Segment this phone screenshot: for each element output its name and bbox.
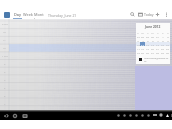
button[interactable]: Month bbox=[34, 12, 45, 24]
staticText: user.name@gmail.com bbox=[144, 56, 170, 62]
staticText: 2 bbox=[4, 62, 6, 65]
staticText: 22 bbox=[161, 47, 164, 50]
staticText: F bbox=[162, 31, 164, 34]
staticText: 18 bbox=[141, 47, 144, 50]
staticText: 28 bbox=[156, 51, 159, 54]
staticText: 27 bbox=[151, 51, 154, 54]
staticText: 11 bbox=[141, 43, 144, 46]
staticText: 15 bbox=[161, 43, 164, 46]
staticText: 25 bbox=[141, 51, 144, 54]
staticText: S bbox=[167, 31, 169, 34]
staticText: 30 bbox=[166, 51, 169, 54]
button[interactable]: More options bbox=[164, 12, 169, 17]
staticText: 14 bbox=[156, 43, 159, 46]
staticText: Thursday, June 21 bbox=[48, 13, 77, 18]
staticText: 28 bbox=[141, 35, 144, 38]
staticText: S bbox=[137, 31, 139, 34]
staticText: 30 bbox=[151, 35, 154, 38]
staticText: 16 bbox=[166, 43, 169, 46]
staticText: Day bbox=[14, 12, 21, 17]
staticText: June 2012 bbox=[145, 25, 161, 29]
staticText: 6 bbox=[152, 39, 154, 42]
staticText: 6 bbox=[4, 94, 6, 97]
button[interactable]: Day bbox=[13, 12, 22, 19]
button[interactable]: user.name@gmail.com bbox=[136, 56, 170, 62]
staticText: 5 bbox=[4, 86, 6, 89]
staticText: 29 bbox=[146, 35, 149, 38]
staticText: 11 bbox=[3, 38, 6, 41]
staticText: 8 bbox=[162, 39, 164, 42]
staticText: 2 bbox=[167, 35, 169, 38]
button[interactable]: Home bbox=[12, 113, 18, 119]
staticText: 10 bbox=[3, 30, 6, 33]
staticText: W bbox=[151, 31, 154, 34]
staticText: 23 bbox=[166, 47, 169, 50]
button[interactable]: Add event bbox=[155, 12, 160, 17]
staticText: M bbox=[141, 31, 144, 34]
staticText: T bbox=[147, 31, 149, 34]
staticText: 3 bbox=[137, 39, 139, 42]
staticText: 13 bbox=[151, 43, 154, 46]
staticText: 27 bbox=[137, 35, 140, 38]
staticText: 5 bbox=[147, 39, 149, 42]
button[interactable]: Search bbox=[130, 12, 135, 17]
staticText: 20 bbox=[151, 47, 154, 50]
button[interactable]: Today bbox=[138, 12, 154, 17]
staticText: 10 bbox=[137, 43, 140, 46]
button[interactable]: Week bbox=[23, 12, 33, 19]
staticText: 1 PM bbox=[2, 54, 8, 57]
staticText: 12 bbox=[146, 43, 149, 46]
staticText: Month bbox=[34, 12, 45, 22]
staticText: 31 bbox=[156, 35, 159, 38]
button[interactable]: Back bbox=[3, 113, 9, 119]
staticText: 7 bbox=[4, 102, 6, 105]
staticText: 1 bbox=[162, 35, 164, 38]
staticText: 19 bbox=[146, 47, 149, 50]
staticText: 4 bbox=[4, 78, 6, 81]
staticText: 4 bbox=[142, 39, 144, 42]
staticText: 9 bbox=[167, 39, 169, 42]
staticText: Week bbox=[23, 12, 33, 17]
staticText: 17 bbox=[137, 47, 140, 50]
staticText: 26 bbox=[146, 51, 149, 54]
staticText: T bbox=[157, 31, 159, 34]
button[interactable]: Recent apps bbox=[22, 113, 28, 119]
button[interactable]: Calendar app bbox=[4, 12, 10, 18]
staticText: 12 bbox=[3, 46, 6, 49]
staticText: 3 bbox=[4, 70, 6, 73]
staticText: 24 bbox=[137, 51, 140, 54]
staticText: 7 bbox=[157, 39, 159, 42]
staticText: 29 bbox=[161, 51, 164, 54]
staticText: 9 AM bbox=[2, 22, 8, 25]
staticText: 21 bbox=[156, 47, 159, 50]
staticText: Today bbox=[144, 12, 154, 17]
